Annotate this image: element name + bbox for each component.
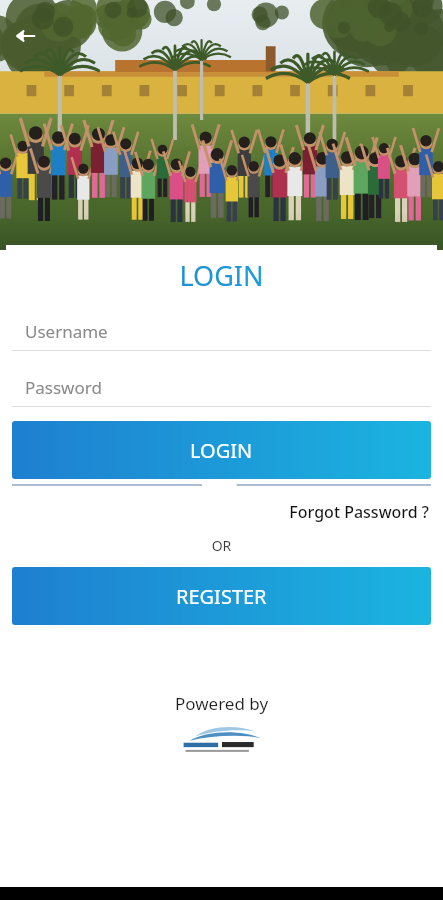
staticText: Username	[25, 320, 108, 343]
button[interactable]: REGISTER	[12, 567, 431, 625]
button[interactable]: Back	[8, 18, 44, 54]
button[interactable]: LOGIN	[12, 421, 431, 479]
button[interactable]: Password	[6, 376, 437, 407]
button[interactable]: Username	[6, 320, 437, 351]
staticText: OR	[6, 536, 437, 555]
staticText: LOGIN	[190, 437, 253, 464]
button[interactable]: Forgot Password ?	[6, 501, 437, 523]
staticText: REGISTER	[176, 583, 267, 610]
staticText: Password	[25, 376, 102, 399]
staticText: LOGIN	[6, 257, 437, 294]
staticText: Powered by	[175, 692, 269, 715]
staticText: Forgot Password ?	[6, 501, 429, 523]
